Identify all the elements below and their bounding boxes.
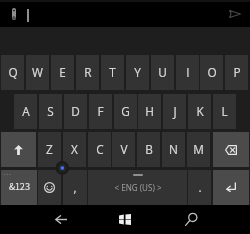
- button[interactable]: X: [63, 132, 86, 167]
- staticText: M: [193, 141, 204, 157]
- button[interactable]: J: [163, 94, 186, 129]
- button[interactable]: S: [39, 94, 62, 129]
- button[interactable]: L: [213, 94, 236, 129]
- staticText: E: [59, 64, 66, 80]
- button[interactable]: W: [26, 55, 49, 90]
- staticText: U: [158, 64, 167, 80]
- button[interactable]: E: [51, 55, 74, 90]
- button[interactable]: ,: [63, 170, 87, 205]
- button[interactable]: R: [76, 55, 99, 90]
- button[interactable]: G: [114, 94, 137, 129]
- button[interactable]: Y: [126, 55, 149, 90]
- button[interactable]: .: [188, 170, 211, 205]
- staticText: S: [47, 103, 54, 119]
- staticText: L: [221, 103, 228, 119]
- staticText: Y: [134, 64, 141, 80]
- staticText: I: [186, 64, 190, 80]
- button[interactable]: Back: [46, 205, 75, 234]
- staticText: V: [120, 141, 128, 157]
- button[interactable]: M: [187, 132, 210, 167]
- staticText: A: [22, 103, 30, 119]
- button[interactable]: C: [88, 132, 111, 167]
- staticText: Z: [46, 141, 53, 157]
- staticText: O: [207, 64, 217, 80]
- button[interactable]: D: [64, 94, 87, 129]
- staticText: P: [233, 64, 241, 80]
- button[interactable]: I: [176, 55, 199, 90]
- button[interactable]: Symbols: [1, 170, 37, 205]
- button[interactable]: Emoji: [38, 170, 61, 205]
- button[interactable]: Q: [1, 55, 24, 90]
- staticText: C: [96, 141, 104, 157]
- staticText: W: [32, 64, 43, 80]
- button[interactable]: B: [137, 132, 160, 167]
- staticText: Q: [8, 64, 18, 80]
- staticText: ,: [73, 179, 77, 195]
- button[interactable]: Start: [110, 205, 139, 234]
- button[interactable]: V: [112, 132, 135, 167]
- button[interactable]: Backspace: [213, 132, 249, 167]
- staticText: K: [196, 103, 204, 119]
- staticText: H: [145, 103, 154, 119]
- staticText: X: [71, 141, 78, 157]
- button[interactable]: N: [162, 132, 185, 167]
- staticText: < ENG (US) >: [114, 182, 162, 193]
- staticText: G: [121, 103, 130, 119]
- staticText: &123: [9, 179, 30, 192]
- button[interactable]: H: [138, 94, 161, 129]
- staticText: N: [169, 141, 178, 157]
- staticText: D: [71, 103, 80, 119]
- staticText: .: [198, 179, 202, 195]
- button[interactable]: Z: [38, 132, 61, 167]
- staticText: T: [109, 64, 116, 80]
- staticText: J: [173, 103, 177, 119]
- button[interactable]: Search: [177, 205, 206, 234]
- staticText: B: [145, 141, 153, 157]
- button[interactable]: O: [200, 55, 223, 90]
- button[interactable]: P: [225, 55, 248, 90]
- button[interactable]: F: [89, 94, 112, 129]
- staticText: F: [97, 103, 104, 119]
- button[interactable]: Space: [88, 170, 187, 205]
- staticText: R: [84, 64, 92, 80]
- button[interactable]: Send: [224, 3, 246, 25]
- button[interactable]: Attach: [6, 4, 22, 24]
- button[interactable]: Shift: [1, 132, 36, 167]
- button[interactable]: U: [151, 55, 174, 90]
- button[interactable]: A: [14, 94, 37, 129]
- button[interactable]: K: [188, 94, 211, 129]
- button[interactable]: T: [101, 55, 124, 90]
- button[interactable]: Enter: [213, 170, 249, 205]
